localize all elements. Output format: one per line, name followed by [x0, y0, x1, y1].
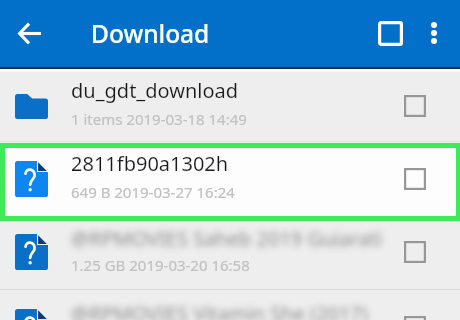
staticText: 649 B 2019-03-27 16:24	[71, 182, 235, 202]
button[interactable]: 2811fb90a1302h	[0, 142, 460, 216]
button[interactable]: More options	[412, 11, 456, 55]
staticText: Download	[91, 17, 210, 50]
button[interactable]: Select item	[393, 84, 437, 128]
staticText: @RPMOVIES Saheb 2019 Gujarati	[71, 225, 383, 247]
button[interactable]: Select item	[393, 230, 437, 274]
staticText: 1.25 GB 2019-03-20 16:58	[71, 255, 250, 275]
button[interactable]: Select item	[393, 305, 437, 320]
staticText: 2811fb90a1302h	[71, 150, 229, 177]
staticText: @RPMOVIES Vitamin She (2017)	[71, 300, 368, 320]
button[interactable]: Select item	[393, 157, 437, 201]
button[interactable]: Select all	[368, 11, 412, 55]
button[interactable]: @RPMOVIES Saheb 2019 Gujarati	[0, 215, 460, 289]
staticText: du_gdt_download	[71, 77, 239, 104]
button[interactable]: Back	[7, 11, 51, 55]
staticText: 1 items 2019-03-18 14:49	[71, 109, 247, 129]
button[interactable]: du_gdt_download	[0, 69, 460, 143]
button[interactable]: @RPMOVIES Vitamin She (2017)	[0, 290, 460, 320]
